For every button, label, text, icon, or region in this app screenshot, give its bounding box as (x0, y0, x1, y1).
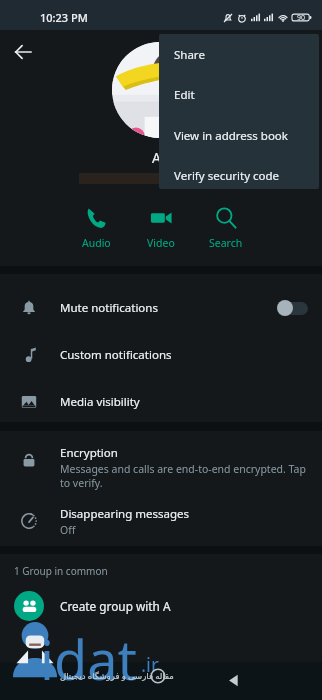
button[interactable]: Video (128, 202, 194, 254)
staticText: Mute notifications (60, 300, 158, 316)
staticText: Audio (82, 236, 111, 250)
button[interactable]: Back (7, 36, 39, 68)
staticText: Video (147, 236, 175, 250)
button[interactable]: Verify security code (159, 162, 319, 189)
staticText: Media visibility (60, 394, 140, 410)
staticText: 1 Group in common (14, 564, 108, 578)
staticText: Messages and calls are end-to-end encryp… (60, 462, 306, 490)
button[interactable]: Audio (63, 202, 129, 254)
staticText: Off (60, 523, 76, 537)
staticText: Edit (174, 87, 195, 103)
staticText: Verify security code (174, 168, 280, 184)
staticText: Ali (152, 148, 169, 167)
staticText: مقاله فارسی و فروشگاه دیجیتال (60, 670, 174, 682)
button[interactable] (112, 42, 208, 138)
button[interactable]: Disappearing messages (0, 498, 322, 545)
staticText: 10:23 PM (40, 10, 88, 25)
staticText: Disappearing messages (60, 506, 190, 522)
staticText: Custom notifications (60, 347, 172, 363)
staticText: idat (40, 622, 137, 696)
button[interactable]: Media visibility (0, 378, 322, 425)
staticText: View in address book (174, 128, 288, 144)
button[interactable]: Share (159, 41, 319, 68)
button[interactable]: View in address book (159, 122, 319, 149)
button[interactable]: Create group with A (0, 584, 322, 628)
button[interactable]: Search (193, 202, 259, 254)
staticText: Search (209, 236, 243, 250)
button[interactable]: Back (215, 662, 251, 698)
staticText: 90 (297, 13, 306, 23)
button[interactable]: Encryption (0, 437, 322, 498)
button[interactable]: Edit (159, 81, 319, 108)
button[interactable]: Mute notifications (0, 284, 322, 331)
staticText: Share (174, 47, 205, 63)
staticText: Encryption (60, 445, 118, 461)
button[interactable]: Custom notifications (0, 331, 322, 378)
staticText: .ir (141, 652, 159, 678)
staticText: Create group with A (60, 598, 171, 614)
